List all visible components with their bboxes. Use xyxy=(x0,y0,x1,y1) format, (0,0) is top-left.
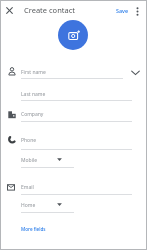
button[interactable] xyxy=(18,64,130,79)
staticText: Email xyxy=(21,184,34,191)
button[interactable] xyxy=(18,107,130,122)
button[interactable]: More fields xyxy=(18,222,49,236)
staticText: Home xyxy=(21,202,36,209)
button[interactable] xyxy=(18,133,130,150)
staticText: More fields xyxy=(21,226,46,232)
button[interactable] xyxy=(2,3,17,18)
staticText: Mobile xyxy=(21,157,38,164)
button[interactable] xyxy=(18,87,130,101)
button[interactable]: Save xyxy=(112,2,132,18)
staticText: Create contact xyxy=(24,5,76,15)
button[interactable] xyxy=(131,3,143,18)
staticText: Save xyxy=(116,7,128,14)
staticText: Phone xyxy=(21,137,37,144)
button[interactable] xyxy=(58,20,88,50)
button[interactable] xyxy=(18,153,74,168)
button[interactable] xyxy=(18,180,130,195)
button[interactable] xyxy=(18,198,74,213)
staticText: Last name xyxy=(21,91,46,98)
staticText: Company xyxy=(21,111,44,118)
staticText: First name xyxy=(21,69,46,76)
